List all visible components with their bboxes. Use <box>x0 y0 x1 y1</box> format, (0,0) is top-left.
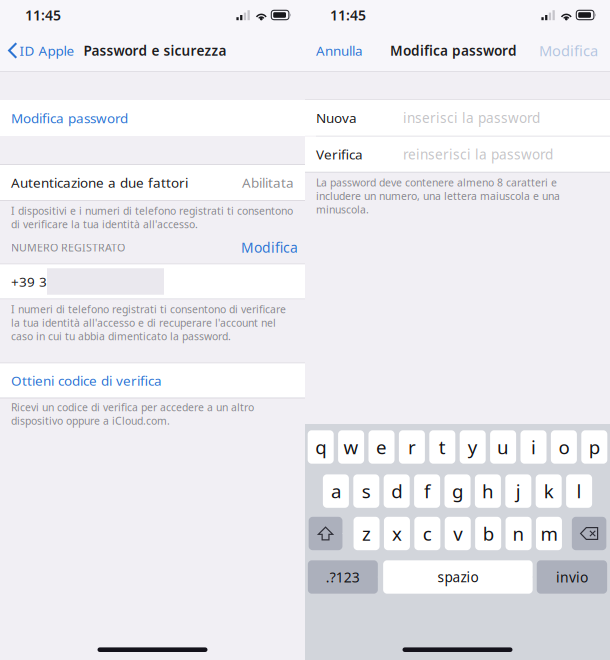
button[interactable]: v <box>445 517 471 550</box>
button[interactable]: ID Apple <box>0 30 74 71</box>
staticText: Modifica <box>539 40 598 60</box>
staticText: i <box>531 434 536 460</box>
staticText: f <box>424 478 430 504</box>
staticText: la tua identità all'accesso e di recuper… <box>11 316 276 330</box>
button[interactable]: o <box>551 430 577 464</box>
button[interactable]: p <box>581 430 607 464</box>
staticText: n <box>512 521 524 546</box>
button[interactable]: c <box>414 517 440 550</box>
button[interactable]: u <box>490 430 516 464</box>
staticText: t <box>439 434 446 460</box>
staticText: Annulla <box>316 41 363 60</box>
staticText: Ricevi un codice di verifica per acceder… <box>11 400 254 414</box>
staticText: dispositivo oppure a iCloud.com. <box>11 414 170 428</box>
staticText: z <box>362 521 371 546</box>
button[interactable]: Shift <box>309 517 342 550</box>
button[interactable]: m <box>536 517 562 550</box>
button[interactable]: r <box>399 430 425 464</box>
button[interactable]: j <box>505 474 531 508</box>
staticText: Modifica password <box>390 41 517 60</box>
staticText: w <box>344 434 359 460</box>
button[interactable]: e <box>368 430 394 464</box>
button[interactable]: q <box>308 430 334 464</box>
staticText: caso in cui tu abbia dimenticato la pass… <box>11 329 231 343</box>
staticText: +39 3 <box>11 272 47 291</box>
staticText: x <box>392 521 402 546</box>
staticText: invio <box>556 568 588 586</box>
staticText: m <box>540 521 557 546</box>
staticText: o <box>558 434 569 460</box>
staticText: b <box>483 521 494 546</box>
staticText: Abilitata <box>242 173 294 192</box>
staticText: 11:45 <box>330 5 366 25</box>
staticText: ID Apple <box>19 41 74 60</box>
button[interactable]: spazio <box>383 560 533 594</box>
button[interactable]: l <box>566 474 592 508</box>
button[interactable]: x <box>384 517 410 550</box>
staticText: 11:45 <box>25 5 61 25</box>
button[interactable]: g <box>444 474 470 508</box>
staticText: I dispositivi e i numeri di telefono reg… <box>11 204 293 218</box>
staticText: j <box>516 478 521 504</box>
staticText: Nuova <box>316 109 357 127</box>
staticText: h <box>482 478 494 504</box>
staticText: Ottieni codice di verifica <box>11 371 162 390</box>
button[interactable]: Modifica <box>241 238 298 257</box>
button[interactable]: y <box>460 430 486 464</box>
button[interactable]: z <box>353 517 379 550</box>
staticText: reinserisci la password <box>403 145 553 163</box>
staticText: Verifica <box>316 145 363 163</box>
staticText: Password e sicurezza <box>83 41 226 60</box>
staticText: Modifica <box>241 238 298 257</box>
button[interactable]: n <box>505 517 531 550</box>
staticText: Autenticazione a due fattori <box>11 173 188 192</box>
button[interactable]: Delete <box>572 517 606 550</box>
button[interactable]: Modifica password <box>0 100 305 136</box>
button[interactable]: s <box>353 474 379 508</box>
button[interactable]: Annulla <box>305 30 363 71</box>
staticText: p <box>589 434 600 460</box>
button[interactable]: w <box>338 430 364 464</box>
button[interactable]: b <box>475 517 501 550</box>
staticText: u <box>497 434 509 460</box>
button[interactable]: k <box>536 474 562 508</box>
staticText: g <box>452 478 463 504</box>
staticText: spazio <box>437 568 478 586</box>
button[interactable]: h <box>475 474 501 508</box>
staticText: La password deve contenere almeno 8 cara… <box>316 175 557 189</box>
staticText: c <box>423 521 432 546</box>
staticText: s <box>362 478 371 504</box>
staticText: d <box>391 478 402 504</box>
button[interactable]: invio <box>537 560 607 594</box>
staticText: k <box>544 478 554 504</box>
button[interactable]: t <box>429 430 455 464</box>
staticText: minuscola. <box>316 202 369 216</box>
staticText: q <box>315 434 326 460</box>
button[interactable]: Ottieni codice di verifica <box>0 363 305 398</box>
button[interactable]: f <box>414 474 440 508</box>
button[interactable]: i <box>520 430 546 464</box>
staticText: di verificare la tua identità all'access… <box>11 217 198 231</box>
staticText: v <box>453 521 462 546</box>
staticText: Modifica password <box>11 109 128 127</box>
staticText: l <box>577 478 582 504</box>
button[interactable]: a <box>323 474 349 508</box>
staticText: includere un numero, una lettera maiusco… <box>316 189 560 203</box>
staticText: NUMERO REGISTRATO <box>11 240 125 255</box>
button[interactable]: .?123 <box>308 560 378 594</box>
button[interactable]: Modifica <box>539 30 610 71</box>
staticText: y <box>468 434 478 460</box>
staticText: r <box>408 434 416 460</box>
staticText: inserisci la password <box>403 108 540 127</box>
staticText: e <box>376 434 387 460</box>
staticText: .?123 <box>326 568 360 586</box>
staticText: I numeri di telefono registrati ti conse… <box>11 302 286 316</box>
staticText: a <box>331 478 341 504</box>
button[interactable]: d <box>384 474 410 508</box>
